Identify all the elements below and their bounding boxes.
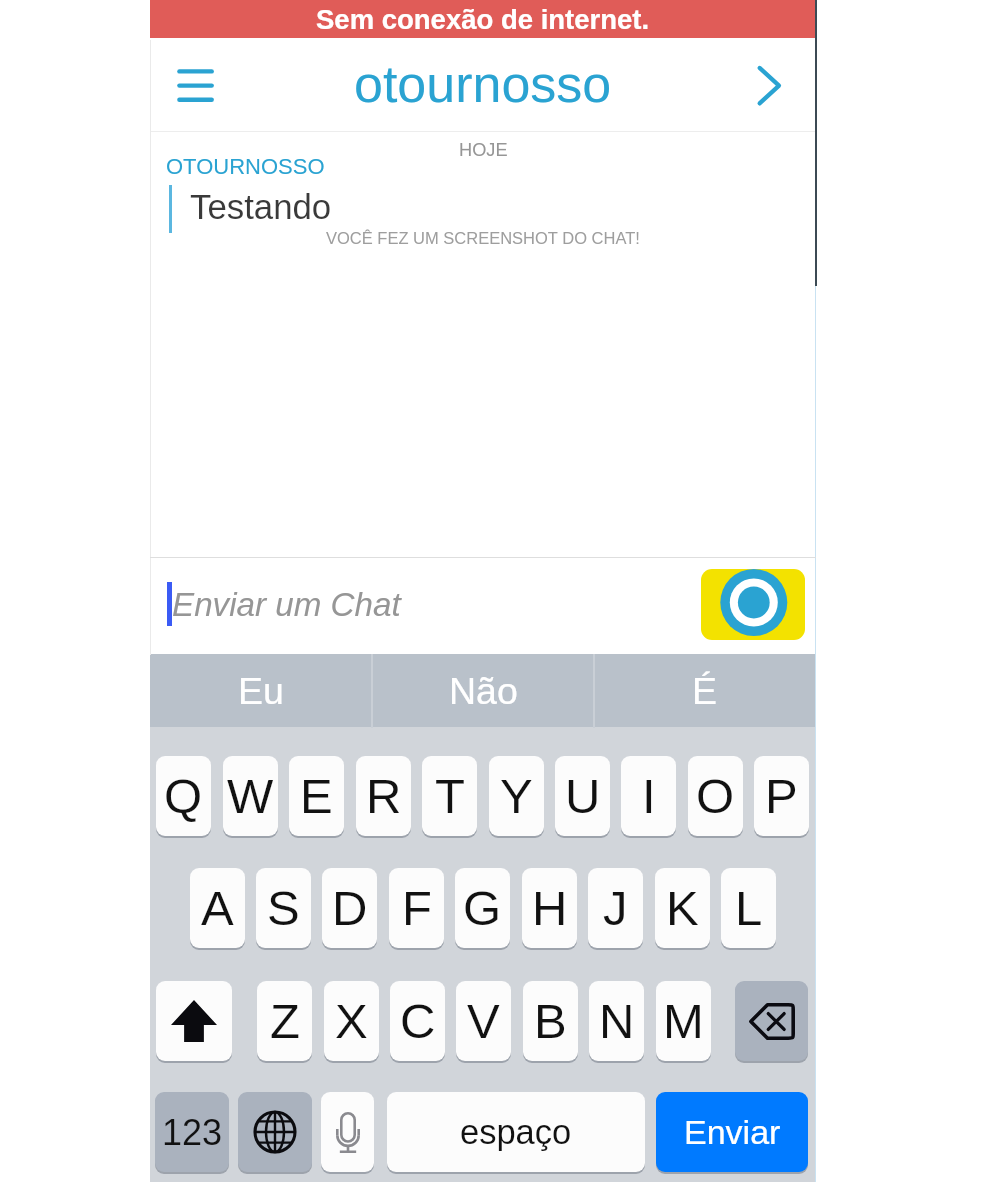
- button[interactable]: B: [523, 981, 578, 1061]
- staticText: Sem conexão de internet.: [316, 4, 650, 35]
- staticText: Q: [164, 769, 203, 824]
- staticText: W: [227, 769, 274, 824]
- staticText: HOJE: [459, 140, 508, 160]
- staticText: F: [402, 881, 432, 936]
- staticText: L: [735, 881, 763, 936]
- button[interactable]: J: [588, 868, 643, 948]
- staticText: Y: [500, 769, 533, 824]
- button[interactable]: Eu: [150, 654, 372, 727]
- staticText: Z: [270, 994, 300, 1049]
- staticText: A: [201, 881, 234, 936]
- staticText: K: [666, 881, 699, 936]
- staticText: Enviar um Chat: [172, 586, 401, 623]
- staticText: 123: [162, 1112, 223, 1152]
- staticText: T: [435, 769, 465, 824]
- staticText: O: [696, 769, 735, 824]
- staticText: E: [300, 769, 333, 824]
- staticText: VOCÊ FEZ UM SCREENSHOT DO CHAT!: [326, 229, 640, 247]
- button[interactable]: L: [721, 868, 776, 948]
- button[interactable]: P: [754, 756, 809, 836]
- staticText: J: [603, 881, 628, 936]
- button[interactable]: N: [589, 981, 644, 1061]
- staticText: B: [534, 994, 567, 1049]
- button[interactable]: Camera: [701, 569, 805, 640]
- button[interactable]: I: [621, 756, 676, 836]
- button[interactable]: Dictate: [321, 1092, 374, 1172]
- staticText: Enviar: [684, 1113, 781, 1151]
- button[interactable]: C: [390, 981, 445, 1061]
- staticText: espaço: [460, 1113, 572, 1152]
- staticText: É: [692, 670, 718, 712]
- button[interactable]: M: [656, 981, 711, 1061]
- button[interactable]: Chat message from otournosso: Testando: [150, 150, 816, 238]
- button[interactable]: K: [655, 868, 710, 948]
- button[interactable]: 123: [155, 1092, 229, 1172]
- staticText: N: [599, 994, 635, 1049]
- staticText: M: [663, 994, 704, 1049]
- staticText: Não: [449, 670, 518, 712]
- staticText: I: [642, 769, 656, 824]
- button[interactable]: W: [223, 756, 278, 836]
- staticText: R: [366, 769, 402, 824]
- staticText: OTOURNOSSO: [166, 154, 325, 179]
- staticText: P: [765, 769, 798, 824]
- staticText: S: [267, 881, 300, 936]
- staticText: G: [463, 881, 502, 936]
- button[interactable]: D: [322, 868, 377, 948]
- button[interactable]: O: [688, 756, 743, 836]
- staticText: D: [332, 881, 368, 936]
- button[interactable]: R: [356, 756, 411, 836]
- button[interactable]: F: [389, 868, 444, 948]
- button[interactable]: Z: [257, 981, 312, 1061]
- button[interactable]: U: [555, 756, 610, 836]
- button[interactable]: espaço: [387, 1092, 645, 1172]
- staticText: X: [335, 994, 368, 1049]
- button[interactable]: Não: [372, 654, 594, 727]
- button[interactable]: E: [289, 756, 344, 836]
- staticText: C: [400, 994, 436, 1049]
- button[interactable]: Enviar: [656, 1092, 808, 1172]
- button[interactable]: G: [455, 868, 510, 948]
- button[interactable]: Open profile: [744, 56, 800, 114]
- staticText: H: [532, 881, 568, 936]
- button[interactable]: Shift: [156, 981, 232, 1061]
- button[interactable]: S: [256, 868, 311, 948]
- button[interactable]: V: [456, 981, 511, 1061]
- button[interactable]: Enviar um Chat: [150, 558, 695, 654]
- staticText: U: [565, 769, 601, 824]
- button[interactable]: Q: [156, 756, 211, 836]
- staticText: otournosso: [354, 55, 612, 113]
- button[interactable]: Change keyboard: [238, 1092, 312, 1172]
- button[interactable]: Y: [489, 756, 544, 836]
- staticText: Testando: [190, 187, 332, 226]
- button[interactable]: Menu: [166, 56, 226, 114]
- button[interactable]: Backspace: [735, 981, 808, 1061]
- button[interactable]: [150, 0, 816, 38]
- button[interactable]: H: [522, 868, 577, 948]
- staticText: V: [467, 994, 500, 1049]
- button[interactable]: A: [190, 868, 245, 948]
- button[interactable]: É: [594, 654, 816, 727]
- button[interactable]: X: [324, 981, 379, 1061]
- staticText: Eu: [238, 670, 284, 712]
- button[interactable]: T: [422, 756, 477, 836]
